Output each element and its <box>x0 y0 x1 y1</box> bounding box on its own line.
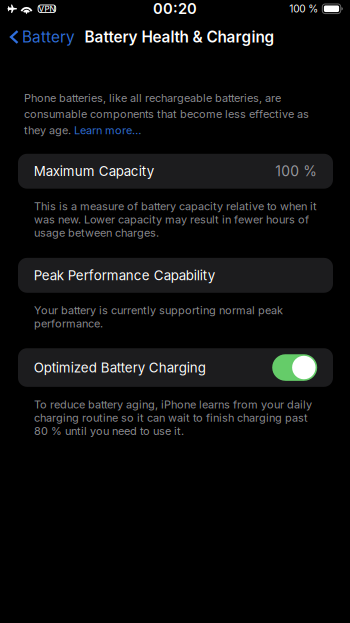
staticText: 00:20 <box>153 0 197 18</box>
staticText: Your battery is currently supporting nor… <box>34 304 283 330</box>
staticText: Learn more… <box>74 124 141 137</box>
staticText: Maximum Capacity <box>34 163 154 179</box>
staticText: 100 % <box>275 163 317 180</box>
staticText: consumable components that become less e… <box>24 107 309 121</box>
staticText: Battery Health & Charging <box>84 28 274 46</box>
staticText: 100 % <box>289 3 318 15</box>
staticText: Peak Performance Capability <box>34 267 215 283</box>
button[interactable]: Optimized Battery Charging <box>272 354 317 381</box>
staticText: Phone batteries, like all rechargeable b… <box>24 91 281 105</box>
button[interactable]: Battery <box>0 22 81 52</box>
staticText: VPN <box>38 4 55 14</box>
staticText: they age. <box>24 124 74 137</box>
staticText: Battery <box>22 28 75 46</box>
button[interactable]: Peak Performance Capability <box>0 258 350 293</box>
button[interactable]: Learn more… <box>74 124 141 137</box>
staticText: Optimized Battery Charging <box>34 359 206 376</box>
staticText: This is a measure of battery capacity re… <box>34 200 317 239</box>
staticText: To reduce battery aging, iPhone learns f… <box>34 398 312 437</box>
